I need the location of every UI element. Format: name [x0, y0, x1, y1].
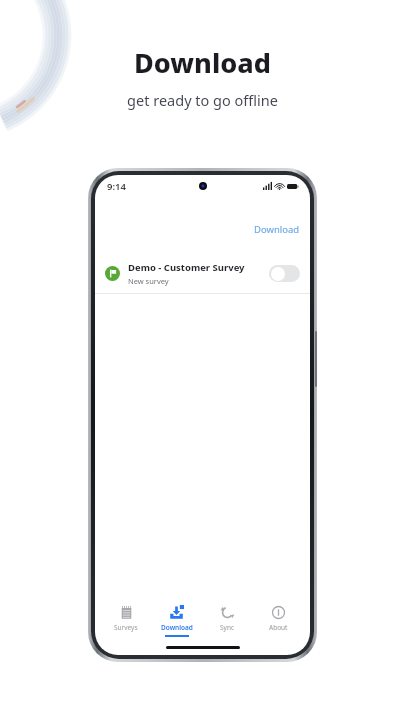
button[interactable]: Sync — [202, 603, 253, 639]
button[interactable]: About — [253, 603, 304, 639]
staticText: Download — [134, 44, 271, 81]
staticText: Surveys — [114, 623, 138, 632]
button[interactable]: Download — [244, 219, 310, 240]
staticText: get ready to go offline — [127, 90, 278, 110]
other: Sync — [220, 605, 235, 620]
other: Download — [169, 605, 184, 620]
staticText: Download — [161, 623, 193, 632]
button[interactable]: Demo - Customer Survey — [95, 254, 310, 293]
staticText: 9:14 — [107, 180, 126, 193]
other: Surveys — [119, 605, 134, 620]
button[interactable]: Download — [151, 603, 202, 639]
staticText: New survey — [128, 276, 169, 286]
staticText: About — [269, 623, 288, 632]
button[interactable]: Select survey for download — [269, 265, 300, 282]
button[interactable]: Surveys — [101, 603, 151, 639]
other: About — [271, 605, 286, 620]
staticText: Sync — [220, 623, 235, 632]
staticText: Download — [254, 223, 300, 236]
staticText: Demo - Customer Survey — [128, 261, 245, 274]
